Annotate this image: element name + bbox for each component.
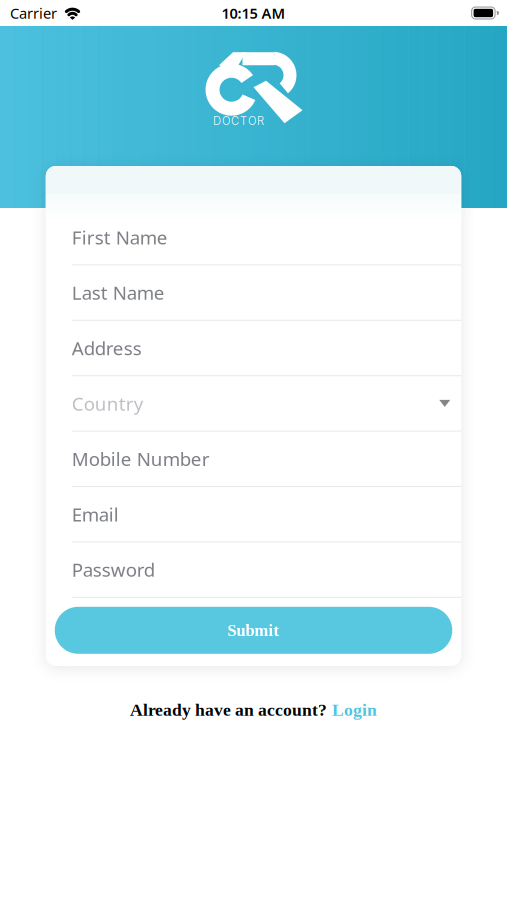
staticText: Already have an account?: [130, 700, 327, 719]
staticText: R: [257, 114, 264, 128]
staticText: Mobile Number: [72, 446, 210, 471]
button[interactable]: Login: [332, 700, 377, 719]
staticText: Email: [72, 502, 119, 527]
staticText: Carrier: [10, 3, 57, 23]
button[interactable]: First Name: [46, 210, 461, 264]
staticText: D: [213, 114, 221, 128]
staticText: Login: [332, 700, 377, 719]
staticText: T: [240, 114, 247, 128]
staticText: O: [248, 114, 256, 128]
button[interactable]: Country: [46, 376, 461, 431]
staticText: Last Name: [72, 280, 165, 305]
staticText: Address: [72, 336, 142, 360]
button[interactable]: Address: [46, 321, 461, 375]
button[interactable]: Submit: [46, 607, 461, 654]
button[interactable]: Mobile Number: [46, 432, 461, 486]
staticText: Country: [72, 391, 144, 416]
staticText: First Name: [72, 225, 168, 250]
button[interactable]: Last Name: [46, 265, 461, 320]
staticText: O: [222, 114, 230, 128]
staticText: 10:15 AM: [221, 3, 285, 23]
staticText: Password: [72, 557, 155, 582]
staticText: C: [231, 114, 239, 128]
button[interactable]: Password: [46, 542, 461, 597]
button[interactable]: Email: [46, 487, 461, 541]
staticText: Submit: [227, 621, 279, 639]
